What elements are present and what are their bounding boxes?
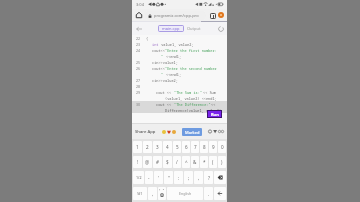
button[interactable]: ! (133, 156, 142, 168)
staticText: 3:04 (136, 2, 144, 7)
button[interactable]: ^ (182, 156, 190, 168)
button[interactable]: Enter (214, 187, 226, 200)
staticText: 26 (136, 66, 141, 71)
button[interactable]: 1/2 (133, 171, 144, 184)
button[interactable]: $ (163, 156, 172, 168)
staticText: 23 (136, 42, 141, 47)
button[interactable]: Marked (182, 128, 202, 136)
button[interactable]: / (173, 156, 181, 168)
staticText: ( (212, 159, 214, 165)
staticText: cin>>value2; (152, 78, 178, 83)
button[interactable]: 5 (173, 141, 181, 153)
button[interactable]: 9 (209, 141, 217, 153)
button[interactable]: Account (218, 12, 224, 18)
button[interactable]: * (200, 156, 208, 168)
staticText: << Sum (203, 90, 216, 95)
staticText: ; (188, 175, 190, 181)
staticText: << (211, 102, 216, 107)
staticText: <<endl; (166, 54, 182, 59)
button[interactable]: . (204, 187, 213, 200)
button[interactable]: main.cpp (162, 25, 180, 32)
staticText: 28 (136, 84, 141, 89)
button[interactable]: , (194, 171, 203, 184)
staticText: 27 (136, 78, 141, 83)
staticText: ! (137, 159, 139, 165)
staticText: programiz.com/cpp-pro (154, 13, 199, 18)
button[interactable]: 8 (200, 141, 208, 153)
staticText: / (176, 159, 178, 165)
staticText: 22 (136, 36, 141, 41)
staticText: Difference(value1, value2) (165, 108, 222, 113)
button[interactable]: Run (207, 110, 222, 118)
staticText: $ (166, 159, 169, 165)
staticText: ' (158, 175, 160, 181)
staticText: "Enter the first number: (165, 48, 217, 53)
staticText: , (152, 191, 154, 197)
button[interactable]: English (167, 187, 203, 200)
button[interactable]: Reload (216, 24, 225, 33)
staticText: "The Difference:" (174, 102, 211, 107)
button[interactable]: Back (134, 24, 143, 33)
staticText: 25 (136, 60, 141, 65)
button[interactable]: 3 (153, 141, 162, 153)
button[interactable]: : (174, 171, 183, 184)
staticText: ? (208, 175, 210, 181)
button[interactable]: - (145, 171, 153, 184)
staticText: : (178, 175, 180, 181)
staticText: 30 (136, 102, 141, 107)
staticText: Output (187, 26, 201, 31)
staticText: value1, value2; (159, 42, 194, 47)
staticText: Run (211, 112, 219, 117)
button[interactable]: ( (209, 156, 217, 168)
staticText: 3 (156, 144, 159, 150)
button[interactable]: 0 (218, 141, 226, 153)
staticText: English (179, 191, 192, 196)
staticText: ^ (185, 159, 188, 165)
staticText: "Enter the second number (165, 66, 217, 71)
staticText: cout<< (152, 66, 165, 71)
button[interactable]: 4 (163, 141, 172, 153)
staticText: 0 (221, 144, 224, 150)
staticText: int (152, 42, 159, 47)
staticText: @ (145, 159, 150, 165)
button[interactable]: " (164, 171, 173, 184)
staticText: # (156, 159, 159, 165)
button[interactable]: Tabs (209, 12, 216, 19)
button[interactable]: , (148, 187, 157, 200)
button[interactable]: programiz.com/cpp-pro (145, 11, 206, 20)
staticText: cin>>value1; (152, 60, 178, 65)
staticText: { (146, 36, 149, 41)
button[interactable]: Home (135, 11, 143, 19)
button[interactable]: 2 (143, 141, 152, 153)
button[interactable]: !#1 (133, 187, 147, 200)
button[interactable]: # (153, 156, 162, 168)
staticText: Marked (185, 130, 200, 135)
button[interactable]: ? (204, 171, 213, 184)
button[interactable]: & (191, 156, 199, 168)
staticText: Share App (135, 129, 156, 135)
button[interactable]: 1 (133, 141, 142, 153)
button[interactable]: ; (184, 171, 193, 184)
staticText: 29 (136, 90, 141, 95)
button[interactable]: 7 (191, 141, 199, 153)
staticText: * (203, 159, 206, 165)
button[interactable]: Backspace (214, 171, 226, 184)
button[interactable]: ' (154, 171, 163, 184)
button[interactable]: Output (187, 26, 201, 31)
staticText: & (193, 159, 197, 165)
button[interactable]: @ (143, 156, 152, 168)
button[interactable]: 6 (182, 141, 190, 153)
staticText: !#1 (137, 191, 143, 196)
staticText: 2 (146, 144, 149, 150)
staticText: 5 (176, 144, 179, 150)
staticText: cout << (156, 90, 174, 95)
staticText: 4 (166, 144, 169, 150)
staticText: "The Sum is:" (174, 90, 203, 95)
staticText: (value1, value2) <<endl; (165, 96, 217, 101)
button[interactable]: Language (158, 187, 166, 200)
staticText: 24 (136, 48, 141, 53)
staticText: <<endl; (166, 72, 182, 77)
staticText: 8 (203, 144, 206, 150)
staticText: cout<< (152, 48, 165, 53)
button[interactable]: ) (218, 156, 226, 168)
